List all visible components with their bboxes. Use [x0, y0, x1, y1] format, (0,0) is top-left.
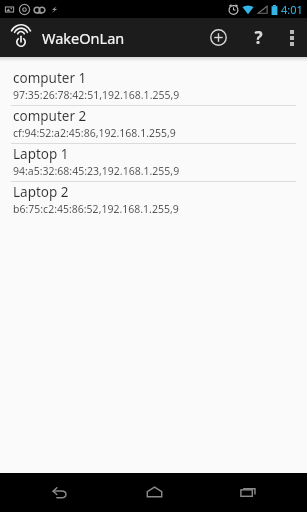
button[interactable]: Back — [24, 473, 94, 512]
button[interactable]: computer 1 — [0, 68, 307, 106]
staticText: Laptop 1 — [13, 145, 69, 163]
button[interactable]: Add — [197, 18, 239, 57]
button[interactable]: Laptop 1 — [0, 144, 307, 182]
staticText: 4:01 — [281, 2, 303, 17]
button[interactable]: computer 2 — [0, 106, 307, 144]
staticText: WakeOnLan — [42, 28, 125, 48]
button[interactable]: More options — [277, 18, 307, 57]
button[interactable]: Help — [239, 18, 277, 57]
button[interactable]: Laptop 2 — [0, 182, 307, 220]
staticText: 97:35:26:78:42:51,192.168.1.255,9 — [13, 88, 180, 102]
staticText: 94:a5:32:68:45:23,192.168.1.255,9 — [13, 164, 180, 178]
staticText: ? — [254, 26, 263, 49]
button[interactable]: Home — [119, 473, 189, 512]
staticText: b6:75:c2:45:86:52,192.168.1.255,9 — [13, 202, 179, 216]
staticText: cf:94:52:a2:45:86,192.168.1.255,9 — [13, 126, 176, 140]
staticText: Laptop 2 — [13, 183, 69, 201]
staticText: computer 2 — [13, 107, 87, 125]
button[interactable]: Recents — [213, 473, 283, 512]
staticText: computer 1 — [13, 69, 87, 87]
